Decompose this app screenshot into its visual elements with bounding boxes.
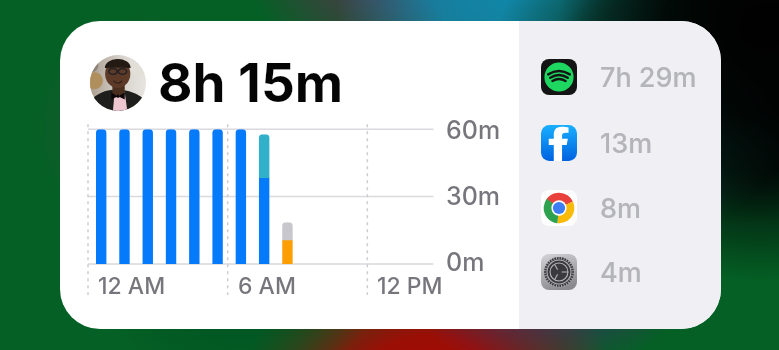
button[interactable]: Chrome xyxy=(541,186,701,230)
button[interactable]: Settings xyxy=(541,250,701,294)
staticText: 4m xyxy=(600,256,642,289)
button[interactable]: Spotify xyxy=(541,55,701,99)
staticText: 8h 15m xyxy=(158,51,344,115)
staticText: 7h 29m xyxy=(600,61,697,94)
button[interactable]: Profile photo xyxy=(90,55,146,111)
staticText: 0m xyxy=(446,247,485,277)
button[interactable]: Facebook xyxy=(541,121,701,165)
staticText: 8m xyxy=(600,192,641,225)
staticText: 12 AM xyxy=(98,272,166,300)
staticText: 6 AM xyxy=(238,272,296,300)
staticText: 60m xyxy=(446,115,501,145)
staticText: 30m xyxy=(446,181,501,211)
staticText: 13m xyxy=(600,127,653,160)
staticText: 12 PM xyxy=(377,272,443,300)
